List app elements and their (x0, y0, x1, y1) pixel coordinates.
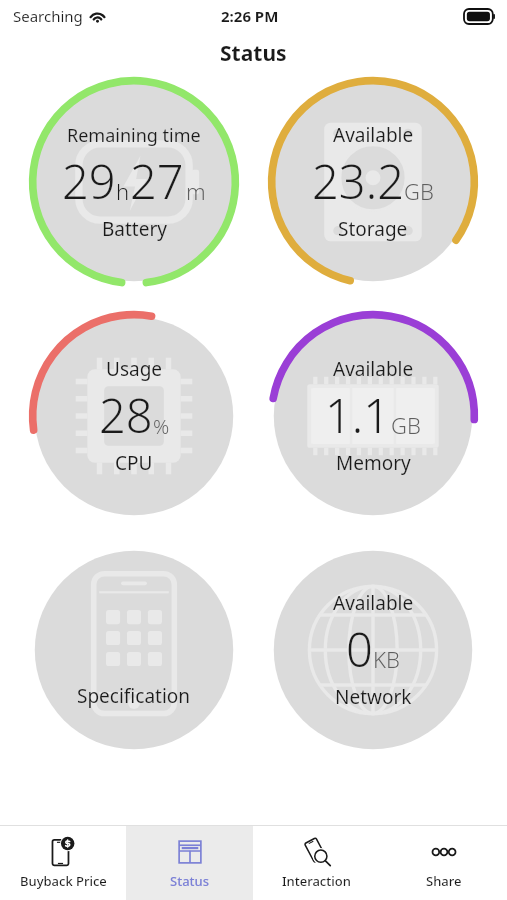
staticText: % (153, 413, 170, 440)
staticText: Remaining time (67, 123, 201, 148)
button[interactable]: Share (380, 826, 507, 900)
staticText: 23.2 (312, 149, 404, 213)
staticText: 29 (62, 149, 116, 213)
staticText: 1.1 (325, 383, 391, 447)
staticText: GB (391, 410, 421, 440)
staticText: KB (373, 644, 400, 674)
staticText: GB (404, 176, 434, 206)
staticText: Searching (13, 6, 83, 26)
staticText: Memory (336, 450, 411, 476)
staticText: h (116, 176, 130, 206)
staticText: 27 (130, 149, 184, 213)
staticText: Buyback Price (20, 872, 107, 890)
button[interactable]: Buyback Price (0, 826, 126, 900)
staticText: Available (333, 122, 414, 148)
staticText: 2:26 PM (221, 6, 279, 26)
staticText: Status (170, 872, 210, 890)
button[interactable]: Specification (28, 544, 240, 756)
button[interactable]: Interaction (253, 826, 380, 900)
staticText: Battery (102, 216, 167, 242)
staticText: Status (220, 39, 287, 68)
button[interactable]: Status (126, 826, 253, 900)
staticText: Interaction (282, 872, 351, 890)
staticText: m (186, 176, 206, 206)
staticText: Network (335, 684, 412, 710)
button[interactable]: Battery status (28, 76, 240, 288)
staticText: Usage (106, 356, 163, 382)
button[interactable]: Memory status (267, 310, 479, 522)
staticText: CPU (115, 450, 153, 476)
staticText: 28 (99, 383, 153, 447)
button[interactable]: Network status (267, 544, 479, 756)
staticText: Specification (77, 683, 191, 709)
staticText: Available (333, 356, 414, 382)
staticText: Storage (338, 216, 408, 242)
staticText: Available (333, 590, 414, 616)
button[interactable]: Storage status (267, 76, 479, 288)
staticText: Share (426, 872, 462, 890)
button[interactable]: CPU status (28, 310, 240, 522)
staticText: 0 (346, 617, 373, 681)
